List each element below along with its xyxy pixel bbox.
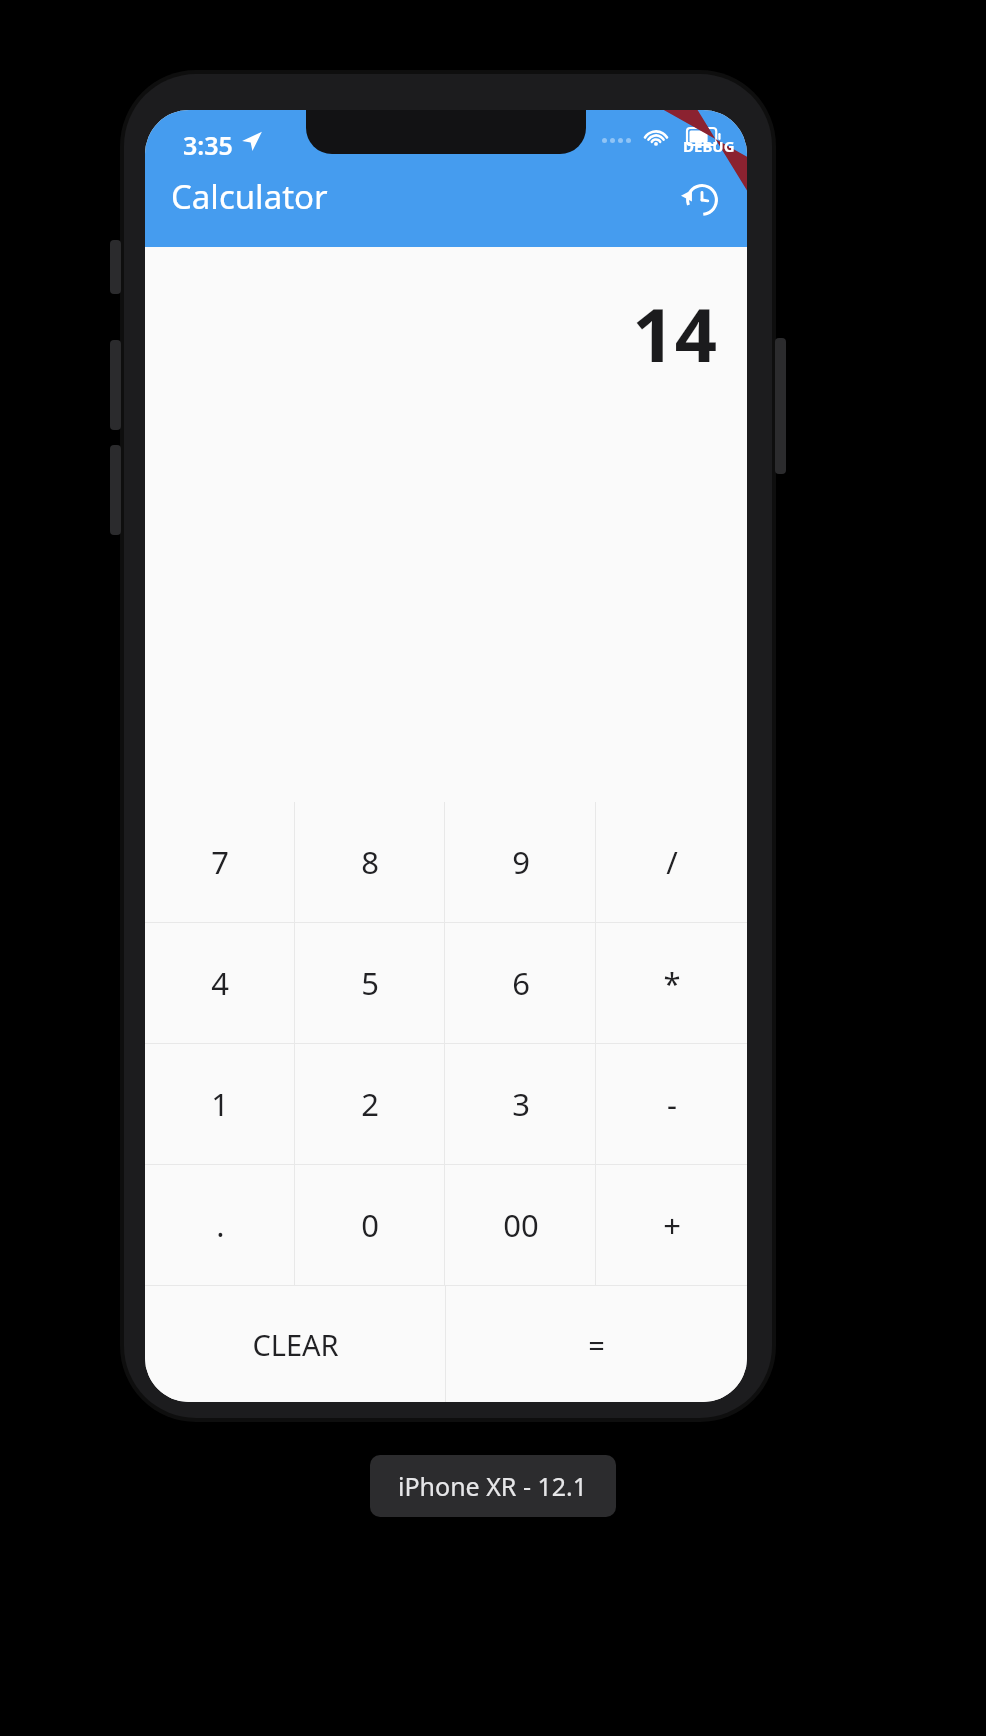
button[interactable]: 4 bbox=[145, 923, 295, 1043]
staticText: 7 bbox=[211, 841, 229, 883]
button[interactable]: 2 bbox=[295, 1044, 445, 1164]
button[interactable]: 8 bbox=[295, 802, 445, 922]
button[interactable]: - bbox=[596, 1044, 747, 1164]
button[interactable]: * bbox=[596, 923, 747, 1043]
staticText: 8 bbox=[361, 841, 379, 883]
staticText: 0 bbox=[361, 1204, 379, 1246]
staticText: + bbox=[663, 1204, 681, 1246]
button[interactable]: 0 bbox=[295, 1165, 445, 1285]
staticText: 3:35 bbox=[183, 128, 233, 162]
button[interactable]: 6 bbox=[445, 923, 596, 1043]
staticText: 00 bbox=[503, 1204, 539, 1246]
button[interactable]: / bbox=[596, 802, 747, 922]
button[interactable]: CLEAR bbox=[145, 1286, 446, 1402]
staticText: 2 bbox=[361, 1083, 379, 1125]
button[interactable]: History bbox=[671, 169, 733, 231]
button[interactable]: 7 bbox=[145, 802, 295, 922]
staticText: iPhone XR - 12.1 bbox=[398, 1469, 588, 1503]
staticText: 3 bbox=[512, 1083, 530, 1125]
staticText: 6 bbox=[512, 962, 530, 1004]
button[interactable]: 3 bbox=[445, 1044, 596, 1164]
staticText: . bbox=[216, 1204, 225, 1246]
button[interactable]: 9 bbox=[445, 802, 596, 922]
staticText: 9 bbox=[512, 841, 530, 883]
staticText: 14 bbox=[632, 283, 717, 384]
button[interactable]: 5 bbox=[295, 923, 445, 1043]
staticText: CLEAR bbox=[252, 1325, 339, 1364]
staticText: / bbox=[666, 841, 678, 883]
button[interactable]: 1 bbox=[145, 1044, 295, 1164]
staticText: 5 bbox=[361, 962, 379, 1004]
button[interactable]: + bbox=[596, 1165, 747, 1285]
staticText: * bbox=[663, 962, 681, 1004]
button[interactable]: = bbox=[446, 1286, 747, 1402]
staticText: DEBUG bbox=[683, 136, 735, 156]
staticText: = bbox=[588, 1325, 605, 1364]
button[interactable]: . bbox=[145, 1165, 295, 1285]
staticText: 1 bbox=[211, 1083, 229, 1125]
staticText: - bbox=[667, 1083, 677, 1125]
button[interactable]: 00 bbox=[445, 1165, 596, 1285]
staticText: Calculator bbox=[171, 174, 328, 219]
staticText: 4 bbox=[211, 962, 229, 1004]
